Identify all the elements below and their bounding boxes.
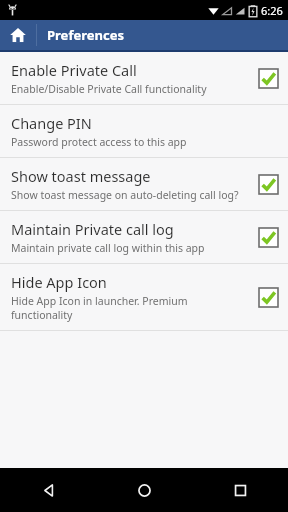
staticText: 6:26: [261, 3, 283, 18]
staticText: Maintain private call log within this ap…: [11, 241, 205, 255]
button[interactable]: Maintain Private call log: [0, 211, 288, 263]
button[interactable]: Show toast message: [0, 158, 288, 210]
button[interactable]: Back: [0, 468, 96, 512]
button[interactable]: Home: [96, 468, 192, 512]
staticText: Enable Private Call: [11, 60, 137, 80]
button[interactable]: Change PIN: [0, 105, 288, 157]
staticText: Show toast message on auto-deleting call…: [11, 188, 239, 202]
button[interactable]: Enable Private Call: [0, 52, 288, 104]
button[interactable]: Maintain Private call log checkbox: [257, 226, 279, 248]
button[interactable]: Enable Private Call checkbox: [257, 67, 279, 89]
button[interactable]: Home: [0, 20, 36, 50]
staticText: Password protect access to this app: [11, 135, 187, 149]
staticText: Maintain Private call log: [11, 219, 174, 239]
staticText: Hide App Icon in launcher. Premium funct…: [11, 294, 249, 322]
staticText: Change PIN: [11, 113, 92, 133]
staticText: Show toast message: [11, 166, 151, 186]
button[interactable]: Recent apps: [192, 468, 288, 512]
staticText: Preferences: [47, 26, 124, 44]
staticText: Enable/Disable Private Call functionalit…: [11, 82, 207, 96]
staticText: Hide App Icon: [11, 272, 107, 292]
button[interactable]: Hide App Icon checkbox: [257, 286, 279, 308]
button[interactable]: Show toast message checkbox: [257, 173, 279, 195]
button[interactable]: Hide App Icon: [0, 264, 288, 330]
